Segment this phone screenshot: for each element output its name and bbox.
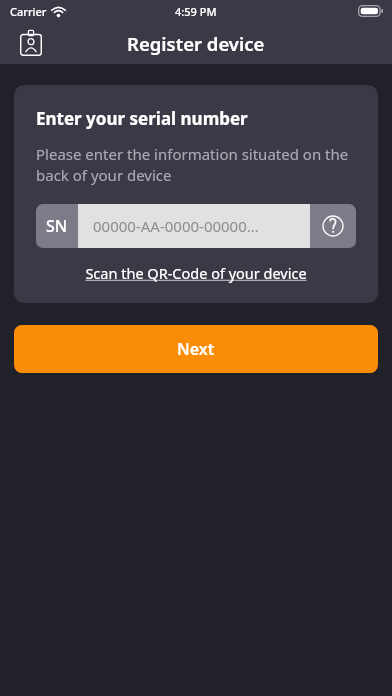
staticText: Carrier: [10, 4, 47, 19]
staticText: Scan the QR-Code of your device: [85, 263, 307, 283]
button[interactable]: Scan the QR-Code of your device: [36, 263, 356, 283]
button[interactable]: Next: [14, 325, 378, 373]
staticText: Please enter the information situated on…: [36, 144, 356, 186]
button[interactable]: Help: [310, 204, 356, 248]
staticText: Next: [177, 338, 215, 360]
staticText: 00000-AA-0000-00000…: [93, 216, 259, 236]
button[interactable]: SN: [36, 204, 356, 248]
staticText: 4:59 PM: [175, 4, 217, 19]
staticText: Enter your serial number: [36, 107, 248, 130]
staticText: Register device: [127, 31, 265, 56]
button[interactable]: Profile badge: [14, 26, 48, 60]
staticText: SN: [46, 215, 68, 237]
